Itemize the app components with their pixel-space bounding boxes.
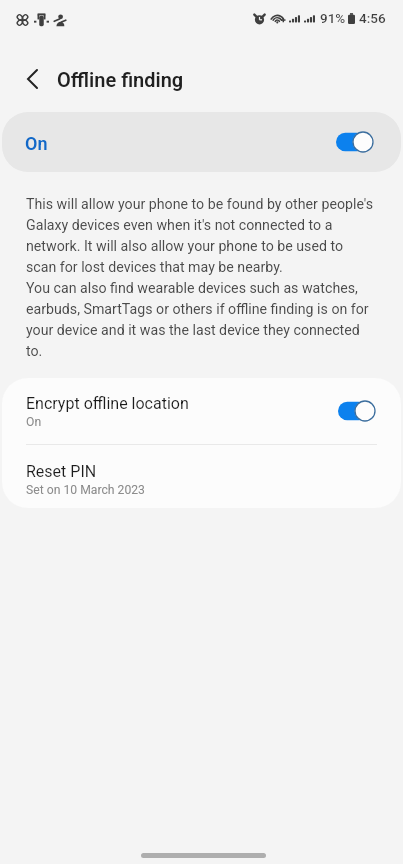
staticText: This will allow your phone to be found b… [26,193,374,361]
button[interactable]: Reset PIN [2,445,401,508]
button[interactable]: Back [10,57,54,101]
staticText: On [25,133,48,154]
staticText: Encrypt offline location [26,394,189,413]
staticText: Set on 10 March 2023 [26,483,145,497]
staticText: Reset PIN [26,462,97,481]
button[interactable]: On [2,112,401,172]
staticText: Offline finding [57,68,184,91]
staticText: 91% [320,10,346,26]
staticText: On [26,415,42,429]
button[interactable]: Encrypt offline location [2,378,401,444]
staticText: 4:56 [359,10,386,26]
